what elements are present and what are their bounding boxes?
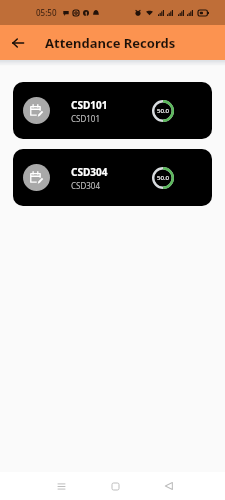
button[interactable]: Back xyxy=(5,30,31,56)
button[interactable]: CSD101 xyxy=(13,82,212,139)
button[interactable]: Recent apps xyxy=(49,474,73,498)
button[interactable]: Back xyxy=(157,474,181,498)
staticText: Attendance Records xyxy=(45,34,176,52)
staticText: 50.0 xyxy=(157,174,169,182)
staticText: CSD101 xyxy=(71,113,101,124)
button[interactable]: CSD304 xyxy=(13,149,212,206)
staticText: CSD101 xyxy=(71,98,108,112)
button[interactable]: Home xyxy=(103,474,127,498)
staticText: 05:50 xyxy=(36,7,57,18)
staticText: CSD304 xyxy=(71,180,101,191)
staticText: CSD304 xyxy=(71,165,108,179)
staticText: 50.0 xyxy=(157,107,169,115)
